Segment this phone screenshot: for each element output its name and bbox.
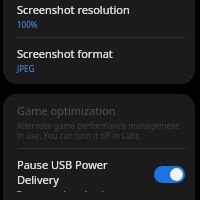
button[interactable]: Pause USB Power Delivery [154,166,185,183]
staticText: Game optimization [17,103,116,118]
staticText: 100% [17,19,38,30]
staticText: To prevent phone heating, pause charging… [17,189,146,192]
button[interactable]: Screenshot resolution [3,0,195,37]
button[interactable]: Game optimization [3,94,195,148]
staticText: Screenshot format [17,46,113,61]
staticText: Pause USB Power Delivery [17,157,146,187]
staticText: Alternate game performance management in… [17,120,183,141]
staticText: JPEG [17,63,35,74]
button[interactable]: Screenshot format [3,38,195,84]
button[interactable]: Pause USB Power Delivery [3,149,195,200]
staticText: Screenshot resolution [17,2,130,17]
